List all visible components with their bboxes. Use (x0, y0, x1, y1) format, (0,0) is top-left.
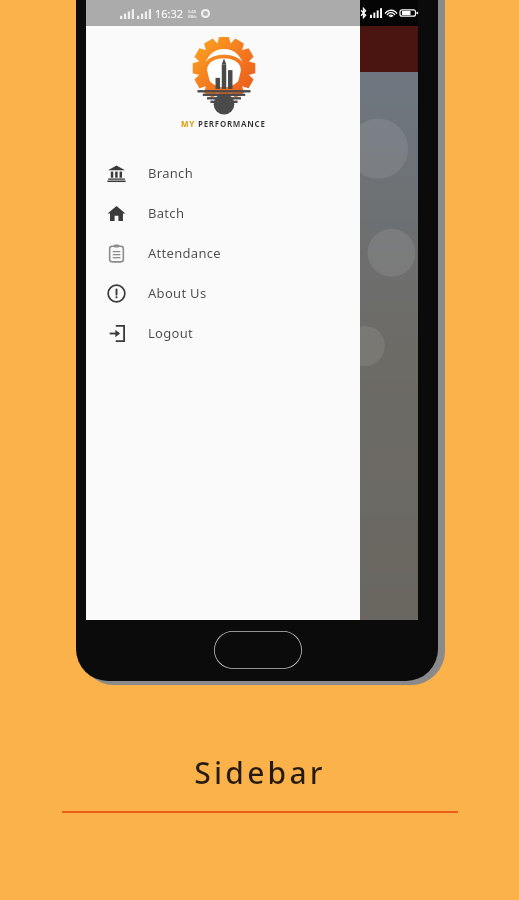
staticText: 0.48 (188, 9, 196, 14)
staticText: Branch (148, 164, 193, 182)
button[interactable]: About Us (86, 273, 360, 313)
button[interactable]: Attendance (86, 233, 360, 273)
staticText: Logout (148, 324, 194, 342)
staticText: PERFORMANCE (198, 118, 266, 129)
button[interactable]: Home button (214, 631, 302, 669)
button[interactable]: Logout (86, 313, 360, 353)
staticText: MY (181, 118, 198, 129)
staticText: 16:32 (155, 6, 184, 21)
button[interactable]: Branch (86, 153, 360, 193)
button[interactable]: Batch (86, 193, 360, 233)
staticText: Sidebar (194, 752, 326, 793)
staticText: Batch (148, 204, 185, 222)
staticText: KB/s (188, 14, 197, 19)
staticText: About Us (148, 284, 207, 302)
staticText: Attendance (148, 244, 221, 262)
